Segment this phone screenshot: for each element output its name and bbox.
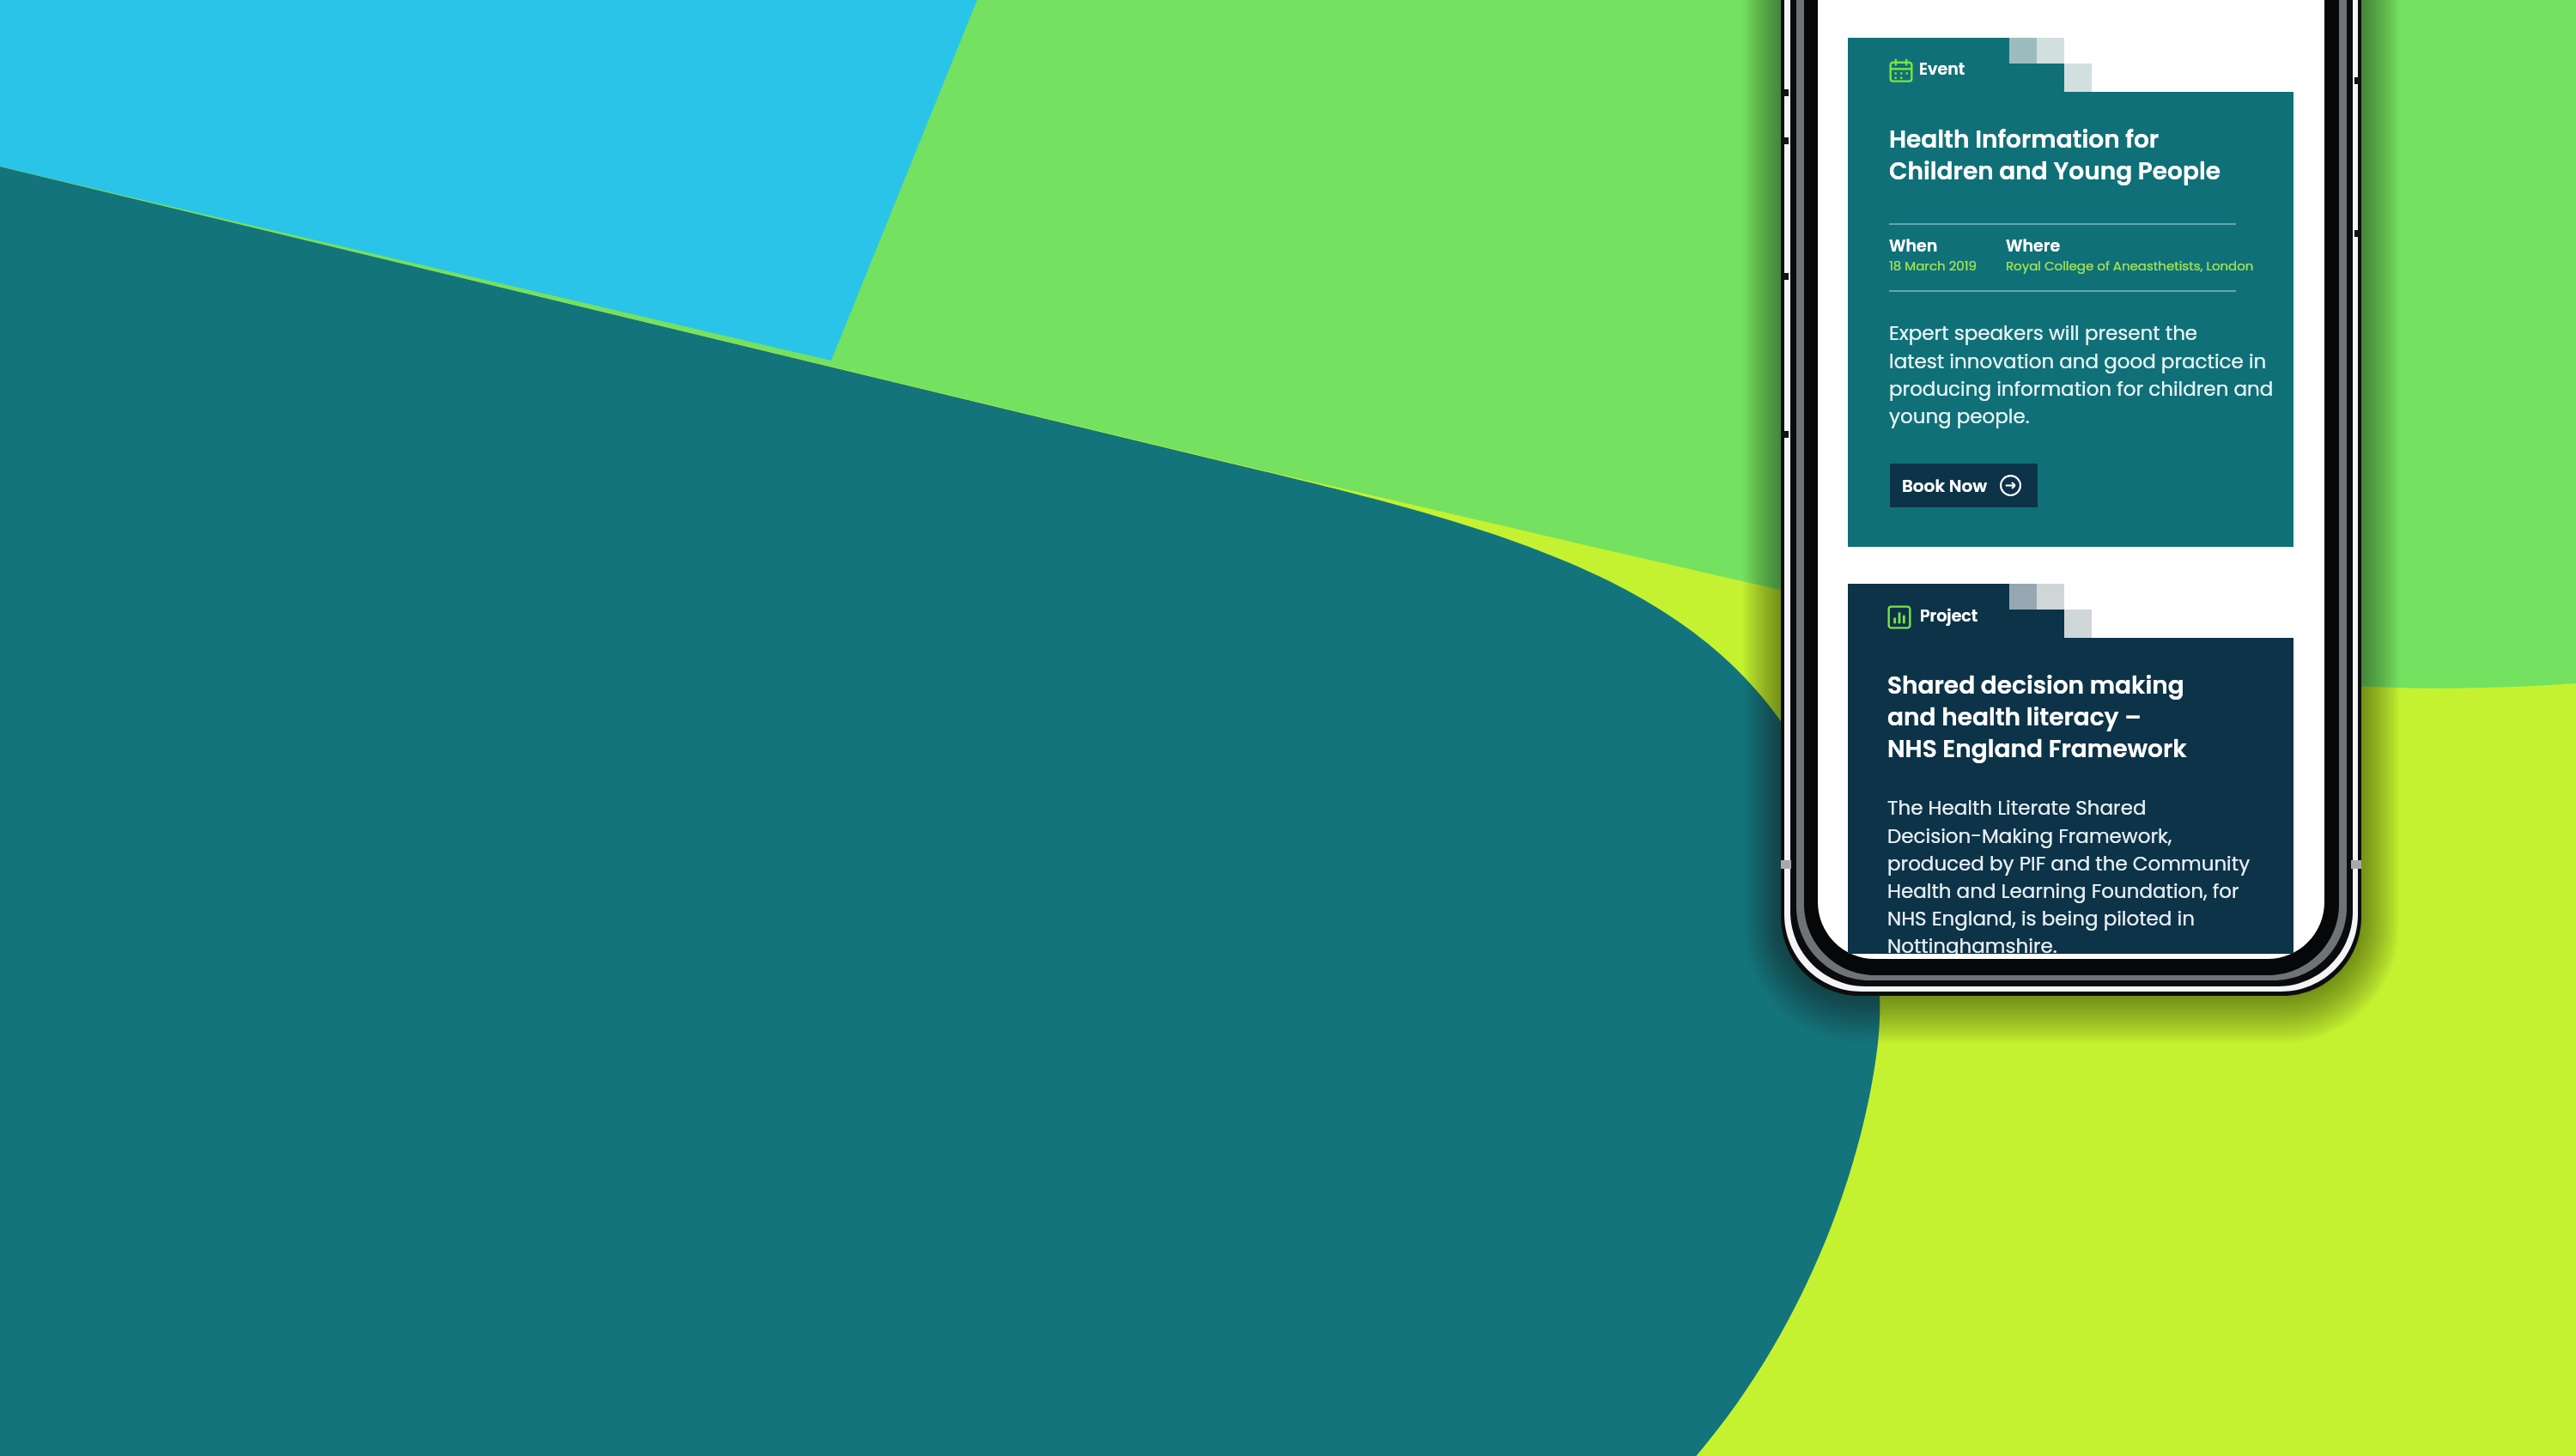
staticText: Health Information for Children and Youn…	[1889, 123, 2221, 188]
staticText: When	[1889, 234, 1938, 258]
staticText: The Health Literate Shared Decision-Maki…	[1887, 794, 2251, 954]
button[interactable]: Project	[1848, 584, 2293, 954]
staticText: Royal College of Aneasthetists, London	[2006, 257, 2254, 275]
staticText: 18 March 2019	[1889, 257, 1977, 275]
staticText: Shared decision making and health litera…	[1887, 669, 2187, 766]
other: Go	[2000, 475, 2021, 496]
button[interactable]: Event	[1848, 38, 2293, 547]
staticText: Book Now	[1902, 474, 1988, 498]
staticText: Event	[1919, 58, 1965, 81]
staticText: Project	[1920, 604, 1978, 628]
staticText: Where	[2006, 234, 2061, 258]
other: Project	[1887, 605, 1911, 629]
button[interactable]: Book Now	[1890, 464, 2038, 507]
staticText: Expert speakers will present the latest …	[1889, 319, 2274, 430]
other: Event	[1889, 58, 1913, 82]
